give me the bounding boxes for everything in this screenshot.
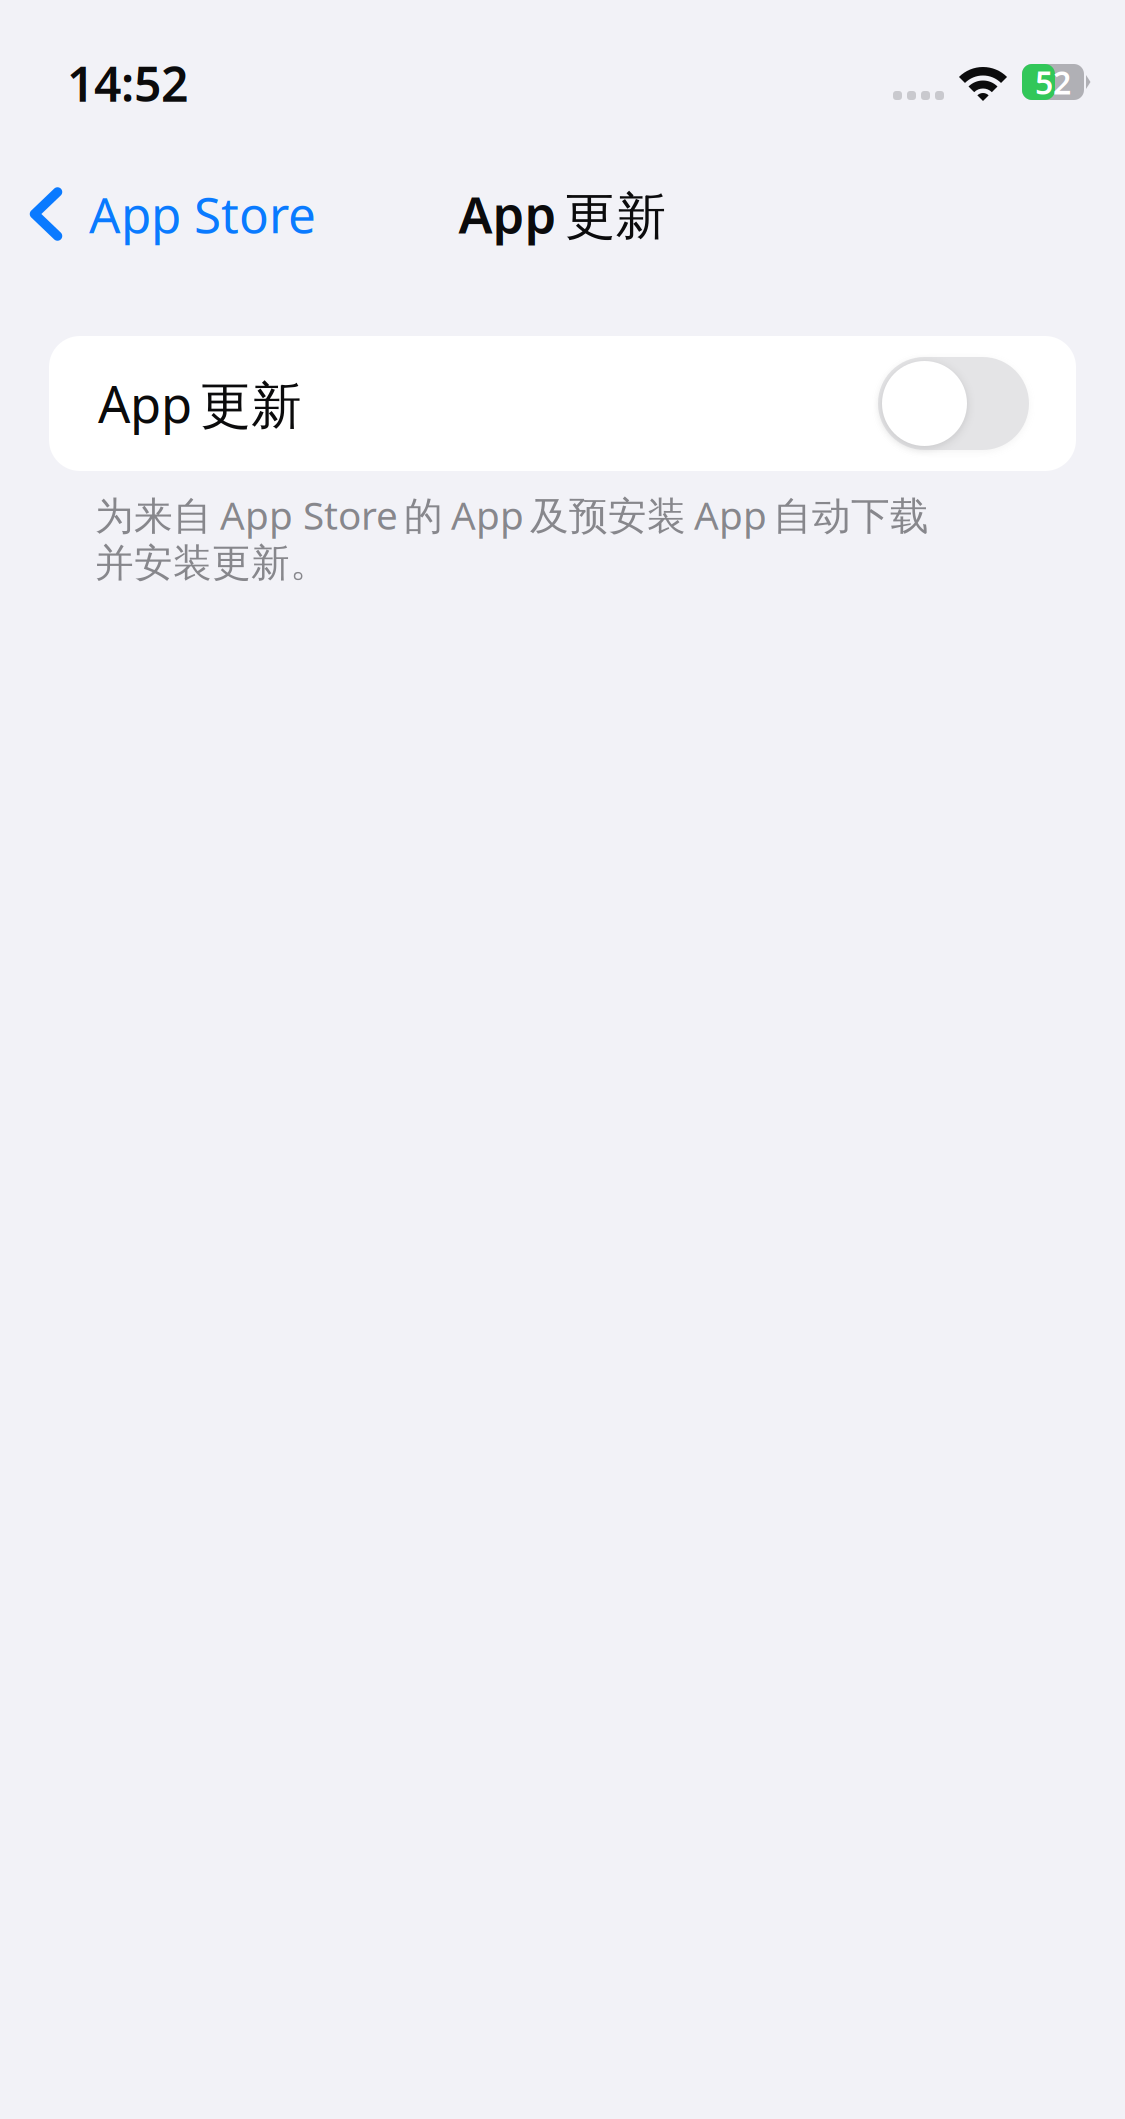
staticText: 52 xyxy=(1035,61,1071,103)
staticText: 为来自 App Store 的 App 及预安装 App 自动下载 并安装更新。 xyxy=(95,489,929,587)
staticText: App Store xyxy=(89,181,316,247)
button[interactable]: Back to App Store xyxy=(0,149,332,261)
button[interactable]: App 更新 xyxy=(878,357,1029,450)
button[interactable]: App 更新 xyxy=(49,336,1076,471)
staticText: App 更新 xyxy=(98,370,302,437)
staticText: App 更新 xyxy=(458,180,666,248)
staticText: 14:52 xyxy=(67,51,188,115)
